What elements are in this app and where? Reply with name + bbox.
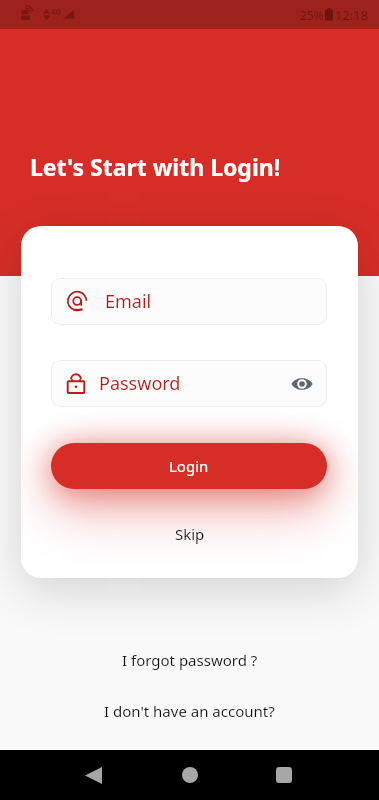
staticText: 25%	[300, 7, 324, 23]
staticText: Login	[169, 456, 209, 476]
button[interactable]: I forgot password ?	[104, 642, 276, 678]
staticText: Let's Start with Login!	[30, 151, 281, 182]
staticText: 12:18	[335, 6, 369, 24]
staticText: Email	[105, 289, 152, 314]
button[interactable]: Back	[71, 753, 115, 797]
button[interactable]: Password	[51, 360, 327, 407]
button[interactable]: Email	[51, 278, 327, 325]
staticText: 4G	[51, 6, 62, 17]
button[interactable]: Login	[51, 443, 327, 489]
button[interactable]: Recent apps	[262, 753, 306, 797]
button[interactable]: I don't have an account?	[86, 693, 293, 729]
staticText: I don't have an account?	[104, 701, 275, 721]
staticText: Password	[99, 371, 181, 396]
staticText: I forgot password ?	[122, 650, 258, 670]
button[interactable]: Home	[168, 753, 212, 797]
button[interactable]: Skip	[157, 516, 223, 552]
staticText: Skip	[175, 524, 205, 544]
button[interactable]: Show password	[289, 371, 315, 397]
